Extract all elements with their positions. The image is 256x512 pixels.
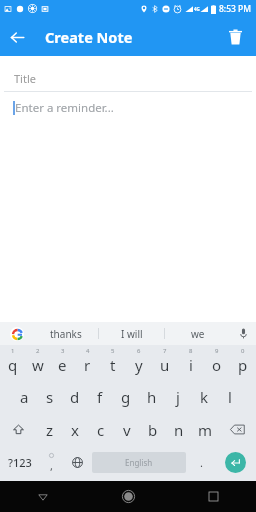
staticText: g [121,387,131,407]
staticText: , [50,458,53,473]
staticText: we [191,327,205,341]
button[interactable]: Delete [219,21,251,53]
button[interactable]: Back [0,481,86,512]
staticText: t [110,355,116,375]
button[interactable]: 5 [100,345,126,380]
button[interactable]: g [113,380,139,413]
button[interactable]: 1 [0,345,25,380]
button[interactable]: c [88,413,114,446]
button[interactable]: 9 [204,345,230,380]
staticText: English [125,457,153,468]
staticText: e [58,355,67,375]
button[interactable]: Change language [64,446,90,479]
staticText: ?123 [8,455,32,470]
button[interactable]: Home [86,481,171,512]
staticText: 6 [137,347,141,355]
button[interactable]: x [62,413,88,446]
button[interactable]: Google [0,322,34,345]
staticText: 8:53 PM [219,3,252,15]
staticText: h [147,387,157,407]
button[interactable]: 2 [25,345,50,380]
button[interactable]: Shift [0,413,37,446]
button[interactable]: z [37,413,62,446]
button[interactable]: 3 [50,345,75,380]
staticText: x [71,420,79,440]
staticText: 5 [111,347,115,355]
button[interactable]: m [192,413,218,446]
staticText: b [148,420,158,440]
button[interactable]: Emoji and comma [39,446,64,479]
staticText: u [160,355,170,375]
staticText: 4 [86,347,90,355]
staticText: Enter a reminder... [15,100,114,116]
button[interactable]: j [165,380,191,413]
button[interactable]: Enter a reminder... [0,96,256,120]
button[interactable]: Voice input [230,322,256,345]
staticText: n [174,420,184,440]
button[interactable]: a [12,380,37,413]
staticText: p [238,355,248,375]
staticText: 4G [194,6,200,12]
button[interactable]: k [191,380,217,413]
staticText: y [135,355,143,375]
button[interactable]: . [188,446,214,479]
staticText: r [84,355,91,375]
button[interactable]: h [139,380,165,413]
staticText: c [97,420,105,440]
staticText: m [198,420,213,440]
button[interactable]: I will [99,322,164,345]
button[interactable]: Title [0,65,256,91]
button[interactable]: f [87,380,113,413]
button[interactable]: English [92,452,186,473]
staticText: I will [121,327,143,341]
button[interactable]: Backspace [218,413,256,446]
staticText: d [70,387,80,407]
staticText: z [46,420,54,440]
staticText: 7 [163,347,167,355]
button[interactable]: Back [0,20,34,54]
button[interactable]: 4 [75,345,100,380]
staticText: w [32,355,44,375]
staticText: . [200,455,203,470]
button[interactable]: d [62,380,87,413]
button[interactable]: ?123 [0,446,39,479]
staticText: v [123,420,131,440]
button[interactable]: l [217,380,243,413]
staticText: 9 [215,347,219,355]
staticText: 2 [36,347,40,355]
staticText: Create Note [45,27,133,47]
staticText: Title [14,71,36,86]
staticText: 1 [11,347,15,355]
staticText: a [20,387,29,407]
staticText: j [176,387,180,407]
staticText: s [46,387,54,407]
button[interactable]: 6 [126,345,152,380]
button[interactable]: 7 [152,345,178,380]
staticText: f [97,387,103,407]
button[interactable]: Recents [171,481,256,512]
button[interactable]: thanks [34,322,98,345]
button[interactable]: 0 [230,345,256,380]
staticText: o [212,355,222,375]
button[interactable]: s [37,380,62,413]
button[interactable]: 8 [178,345,204,380]
staticText: l [228,387,232,407]
button[interactable]: we [165,322,230,345]
staticText: 0 [241,347,245,355]
staticText: q [8,355,18,375]
staticText: 8 [189,347,193,355]
button[interactable]: b [140,413,166,446]
staticText: thanks [50,327,82,341]
button[interactable]: v [114,413,140,446]
button[interactable]: Enter [214,446,256,479]
button[interactable]: n [166,413,192,446]
staticText: k [200,387,209,407]
staticText: 3 [61,347,65,355]
staticText: i [189,355,193,375]
